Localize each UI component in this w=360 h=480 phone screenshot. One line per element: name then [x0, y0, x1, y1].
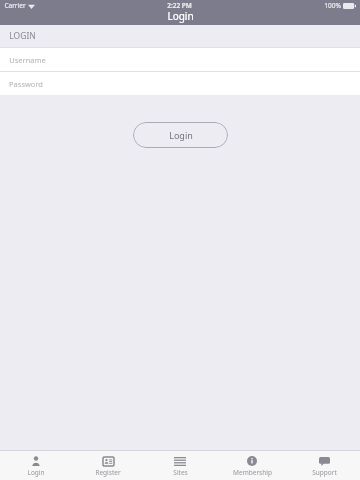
staticText: Password [9, 79, 43, 89]
staticText: Carrier [4, 1, 26, 10]
button[interactable]: Register [72, 455, 144, 477]
staticText: Register [95, 468, 121, 477]
staticText: 100% [324, 1, 341, 10]
button[interactable]: Sites [144, 455, 216, 477]
staticText: Login [167, 9, 194, 23]
staticText: Membership [233, 468, 272, 477]
staticText: LOGIN [9, 30, 36, 42]
button[interactable]: Username [0, 48, 360, 71]
button[interactable]: Password [0, 72, 360, 95]
staticText: 2:22 PM [167, 1, 192, 10]
staticText: Sites [173, 468, 188, 477]
staticText: Login [27, 468, 45, 477]
button[interactable]: Support [288, 455, 360, 477]
staticText: Username [9, 55, 46, 65]
button[interactable]: Login [0, 455, 72, 477]
button[interactable]: Membership [216, 455, 288, 477]
staticText: Login [169, 129, 193, 141]
button[interactable]: Login [133, 122, 228, 148]
staticText: Support [312, 468, 337, 477]
